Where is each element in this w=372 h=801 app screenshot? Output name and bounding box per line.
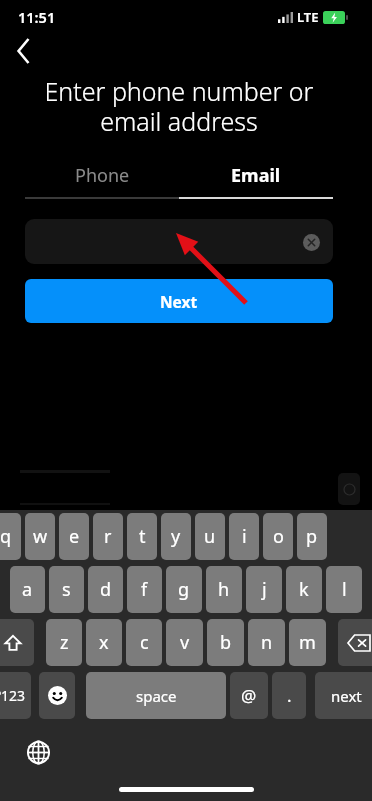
staticText: LTE: [297, 8, 319, 26]
staticText: m: [299, 630, 316, 655]
staticText: Enter phone number or email address: [22, 74, 336, 139]
button[interactable]: i: [229, 513, 259, 560]
button[interactable]: w: [25, 513, 55, 560]
button[interactable]: ?123: [0, 672, 31, 719]
staticText: p: [306, 524, 318, 549]
staticText: ?123: [0, 686, 26, 705]
staticText: y: [171, 524, 181, 549]
staticText: n: [261, 630, 273, 655]
button[interactable]: r: [93, 513, 123, 560]
button[interactable]: Emoji: [39, 672, 75, 719]
staticText: Phone: [75, 163, 130, 188]
staticText: Next: [160, 291, 198, 312]
staticText: t: [139, 524, 146, 549]
button[interactable]: Phone: [25, 159, 179, 191]
button[interactable]: next: [315, 672, 372, 719]
button[interactable]: n: [248, 619, 285, 666]
button[interactable]: q: [0, 513, 21, 560]
button[interactable]: Shift: [0, 619, 34, 666]
button[interactable]: a: [10, 566, 45, 613]
staticText: .: [287, 684, 292, 707]
staticText: g: [178, 577, 190, 602]
staticText: Email: [231, 163, 281, 188]
staticText: next: [331, 686, 362, 706]
button[interactable]: t: [127, 513, 157, 560]
button[interactable]: space: [86, 672, 226, 719]
staticText: x: [99, 630, 109, 655]
button[interactable]: p: [297, 513, 327, 560]
staticText: h: [218, 577, 230, 602]
button[interactable]: .: [272, 672, 306, 719]
button[interactable]: u: [195, 513, 225, 560]
button[interactable]: Clear text: [25, 219, 333, 264]
staticText: l: [342, 577, 347, 602]
button[interactable]: @: [230, 672, 268, 719]
staticText: d: [100, 577, 112, 602]
staticText: s: [62, 577, 71, 602]
button[interactable]: h: [206, 566, 242, 613]
staticText: q: [0, 524, 12, 549]
button[interactable]: s: [49, 566, 84, 613]
staticText: v: [180, 630, 190, 655]
button[interactable]: b: [207, 619, 244, 666]
staticText: w: [33, 524, 48, 549]
staticText: o: [273, 524, 284, 549]
button[interactable]: j: [246, 566, 282, 613]
staticText: r: [104, 524, 112, 549]
staticText: a: [22, 577, 33, 602]
staticText: space: [136, 686, 177, 706]
button[interactable]: e: [59, 513, 89, 560]
button[interactable]: z: [46, 619, 82, 666]
button[interactable]: Back: [0, 34, 46, 68]
button[interactable]: o: [263, 513, 293, 560]
staticText: j: [262, 577, 267, 602]
button[interactable]: y: [161, 513, 191, 560]
staticText: k: [299, 577, 309, 602]
button[interactable]: m: [289, 619, 326, 666]
button[interactable]: l: [326, 566, 362, 613]
button[interactable]: Next: [25, 279, 333, 323]
button[interactable]: g: [166, 566, 202, 613]
button[interactable]: f: [127, 566, 162, 613]
staticText: @: [241, 684, 257, 707]
button[interactable]: c: [126, 619, 162, 666]
button[interactable]: x: [86, 619, 122, 666]
button[interactable]: Change keyboard language: [21, 735, 55, 769]
button[interactable]: v: [166, 619, 203, 666]
staticText: u: [204, 524, 216, 549]
button[interactable]: Backspace: [338, 619, 372, 666]
staticText: z: [60, 630, 69, 655]
staticText: i: [242, 524, 247, 549]
staticText: e: [69, 524, 80, 549]
staticText: f: [141, 577, 148, 602]
button[interactable]: Email: [179, 159, 333, 191]
button[interactable]: k: [286, 566, 322, 613]
button[interactable]: Clear text: [298, 229, 324, 255]
staticText: c: [140, 630, 149, 655]
staticText: b: [220, 630, 232, 655]
staticText: 11:51: [18, 7, 56, 27]
button[interactable]: d: [88, 566, 123, 613]
